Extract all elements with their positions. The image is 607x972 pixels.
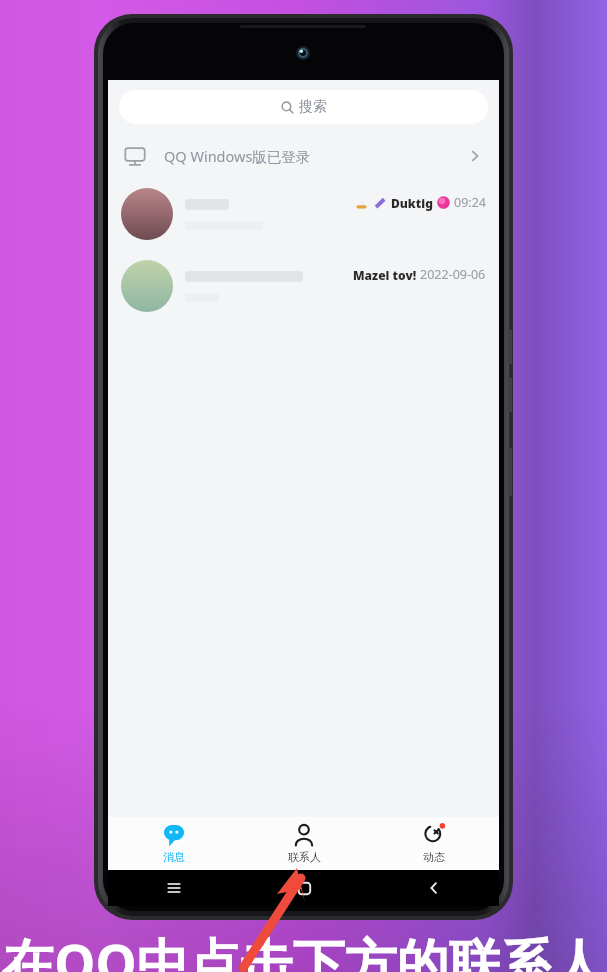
staticText: 在QQ中点击下方的联系人 (2, 926, 605, 972)
staticText: Duktig (391, 195, 433, 211)
staticText: QQ Windows版已登录 (164, 146, 311, 166)
button[interactable]: Duktig (108, 178, 499, 250)
staticText: Mazel tov! (353, 267, 417, 283)
button[interactable]: QQ Windows版已登录 (108, 134, 499, 178)
button[interactable]: Recent apps (108, 870, 239, 906)
staticText: 消息 (163, 850, 185, 864)
staticText: 09:24 (454, 194, 486, 211)
button[interactable]: 联系人 (239, 817, 369, 870)
button[interactable]: Mazel tov! (108, 250, 499, 322)
staticText: 动态 (423, 850, 445, 864)
button[interactable]: 搜索 (119, 90, 488, 124)
staticText: 搜索 (299, 98, 327, 116)
button[interactable]: 动态 (369, 817, 499, 870)
staticText: 2022-09-06 (420, 266, 486, 283)
button[interactable]: Home (239, 870, 369, 906)
button[interactable]: 消息 (108, 817, 239, 870)
staticText: 联系人 (288, 850, 321, 864)
button[interactable]: Back (369, 870, 499, 906)
